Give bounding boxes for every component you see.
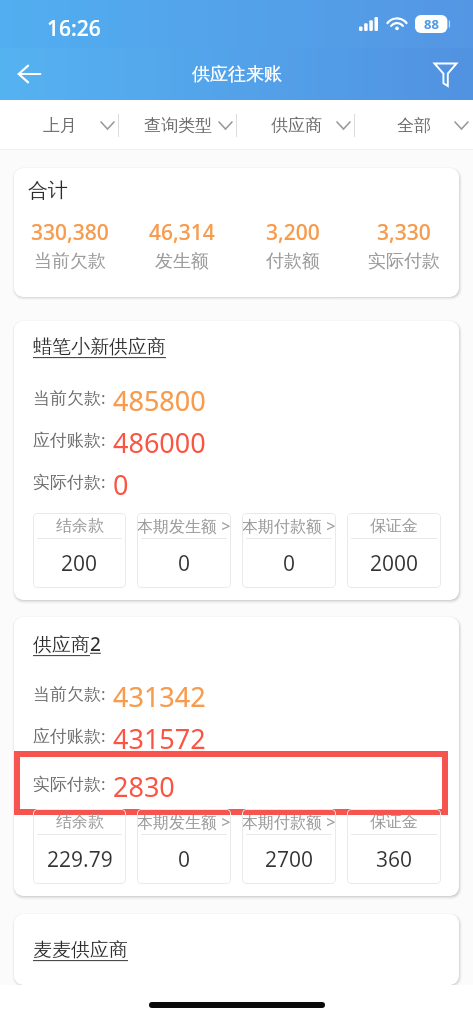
staticText: 结余款	[56, 516, 104, 536]
staticText: 供应商2	[33, 631, 101, 657]
staticText: 应付账款:	[33, 428, 106, 451]
staticText: 全部	[397, 115, 431, 136]
staticText: 本期付款额 >	[242, 811, 336, 833]
button[interactable]: 本期发生额 >	[137, 809, 231, 884]
staticText: 发生额	[155, 250, 209, 273]
staticText: 查询类型	[144, 115, 212, 136]
button[interactable]: 保证金	[347, 809, 441, 884]
staticText: 当前欠款:	[33, 386, 106, 409]
staticText: 当前欠款	[34, 250, 106, 273]
staticText: 2700	[265, 845, 314, 874]
staticText: 360	[376, 845, 413, 874]
staticText: 200	[61, 549, 98, 578]
button[interactable]: 本期付款额 >	[242, 809, 336, 884]
button[interactable]: 查询类型	[119, 100, 237, 150]
staticText: 实际付款:	[33, 772, 106, 795]
staticText: 保证金	[370, 812, 418, 832]
button[interactable]: 保证金	[347, 513, 441, 588]
button[interactable]: 结余款	[33, 513, 126, 588]
staticText: 付款额	[266, 250, 320, 273]
staticText: 应付账款:	[33, 724, 106, 747]
staticText: 结余款	[56, 812, 104, 832]
staticText: 麦麦供应商	[33, 938, 128, 962]
button[interactable]: 结余款	[33, 809, 126, 884]
staticText: 229.79	[47, 845, 113, 874]
button[interactable]: 全部	[355, 100, 473, 150]
staticText: 上月	[43, 115, 77, 136]
staticText: 431342	[113, 678, 206, 708]
button[interactable]: 本期发生额 >	[137, 513, 231, 588]
staticText: 0	[178, 845, 191, 874]
staticText: 486000	[113, 424, 206, 454]
staticText: 3,330	[377, 218, 431, 247]
staticText: 0	[178, 549, 191, 578]
staticText: 88	[424, 15, 439, 33]
staticText: 实际付款	[368, 250, 440, 273]
staticText: 3,200	[266, 218, 320, 247]
button[interactable]: Filter	[417, 48, 473, 100]
staticText: 本期付款额 >	[242, 515, 336, 537]
staticText: 46,314	[149, 218, 215, 247]
staticText: 本期发生额 >	[137, 515, 231, 537]
staticText: 431572	[113, 720, 206, 750]
staticText: 0	[113, 466, 129, 496]
staticText: 供应往来账	[192, 63, 282, 86]
staticText: 供应商	[271, 115, 322, 136]
staticText: 实际付款:	[33, 470, 106, 493]
staticText: 2000	[370, 549, 419, 578]
button[interactable]: Back	[0, 48, 58, 100]
button[interactable]: 上月	[0, 100, 119, 150]
button[interactable]: 本期付款额 >	[242, 513, 336, 588]
staticText: 330,380	[31, 218, 109, 247]
staticText: 合计	[28, 178, 68, 203]
button[interactable]: 供应商	[237, 100, 355, 150]
staticText: 0	[283, 549, 296, 578]
staticText: 485800	[113, 382, 206, 412]
staticText: 2830	[113, 768, 175, 798]
staticText: 16:26	[47, 14, 101, 43]
staticText: 当前欠款:	[33, 682, 106, 705]
staticText: 蜡笔小新供应商	[33, 335, 166, 359]
staticText: 保证金	[370, 516, 418, 536]
staticText: 本期发生额 >	[137, 811, 231, 833]
